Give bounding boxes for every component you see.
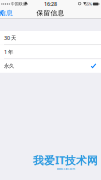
staticText: 1 年 xyxy=(4,48,13,55)
staticText: 永久 xyxy=(4,63,14,69)
staticText: www.5ait.com xyxy=(56,167,74,171)
button[interactable]: 信息 xyxy=(0,8,16,18)
button[interactable]: 30 天 xyxy=(0,31,101,45)
staticText: 30 天 xyxy=(4,34,16,41)
staticText: 保留信息 xyxy=(36,9,64,17)
staticText: 中国联通 xyxy=(10,1,27,6)
button[interactable]: 永久 xyxy=(0,59,101,73)
staticText: 16:28 xyxy=(44,0,57,8)
button[interactable]: 1 年 xyxy=(0,45,101,59)
staticText: 55% xyxy=(85,1,92,7)
staticText: 我爱IT技术网 xyxy=(33,153,98,167)
staticText: 信息 xyxy=(0,9,13,17)
